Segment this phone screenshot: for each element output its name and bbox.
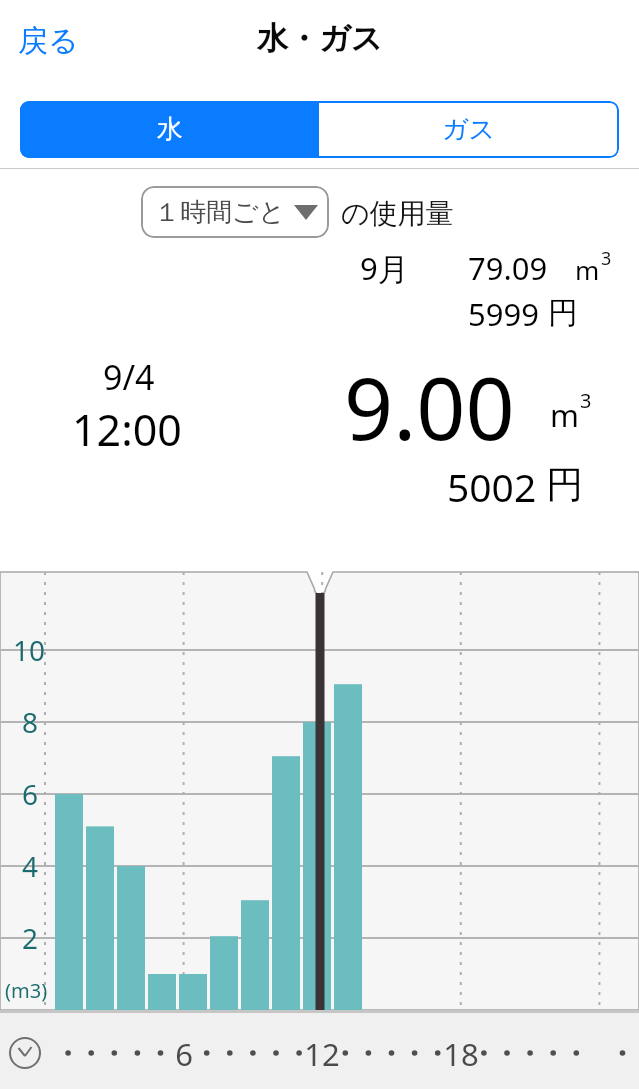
staticText: の使用量 xyxy=(341,196,454,231)
staticText: 18 xyxy=(441,1033,481,1075)
button[interactable]: １時間ごと xyxy=(141,186,329,238)
staticText: 4 xyxy=(22,847,39,885)
staticText: 円 xyxy=(546,461,583,508)
staticText: m xyxy=(575,252,600,287)
staticText: 9/4 xyxy=(103,354,155,400)
staticText: 3 xyxy=(580,387,592,414)
staticText: m xyxy=(550,394,579,436)
staticText: 5002 xyxy=(447,460,537,513)
staticText: 79.09 xyxy=(468,247,548,289)
staticText: 12 xyxy=(302,1033,342,1075)
staticText: 9月 xyxy=(360,247,409,289)
staticText: ガス xyxy=(442,113,496,146)
staticText: 水・ガス xyxy=(257,19,383,58)
staticText: 2 xyxy=(22,919,39,957)
staticText: 10 xyxy=(13,631,46,669)
staticText: 6 xyxy=(22,775,39,813)
staticText: 6 xyxy=(164,1033,204,1075)
staticText: 5999 xyxy=(468,293,539,335)
staticText: (m3) xyxy=(5,977,48,1004)
staticText: 9.00 xyxy=(344,348,515,465)
staticText: 円 xyxy=(548,294,578,332)
staticText: 3 xyxy=(601,246,612,271)
staticText: 12:00 xyxy=(72,400,182,459)
staticText: 戻る xyxy=(18,22,79,60)
staticText: １時間ごと xyxy=(154,196,286,229)
button[interactable]: 戻る xyxy=(8,14,89,68)
button[interactable]: 水 xyxy=(20,101,319,158)
staticText: 8 xyxy=(22,703,39,741)
staticText: 水 xyxy=(157,113,183,146)
button[interactable]: ガス xyxy=(319,101,619,158)
